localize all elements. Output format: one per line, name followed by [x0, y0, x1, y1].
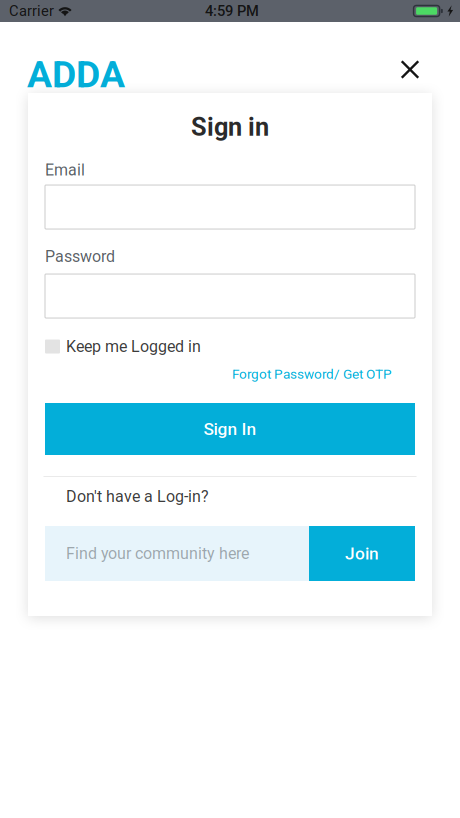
button[interactable]: Close	[388, 47, 432, 91]
button[interactable]: Join	[309, 526, 415, 581]
button[interactable]: Sign In	[45, 403, 415, 455]
staticText: ADDA	[27, 53, 125, 96]
staticText: Sign in	[191, 112, 269, 142]
staticText: Carrier	[9, 2, 54, 20]
staticText: Find your community here	[66, 544, 249, 563]
staticText: Keep me Logged in	[66, 337, 201, 356]
button[interactable]: Find your community here	[45, 526, 309, 581]
staticText: Sign In	[203, 419, 256, 439]
staticText: 4:59 PM	[205, 2, 259, 20]
staticText: Forgot Password/ Get OTP	[232, 366, 392, 382]
button[interactable]: Forgot Password/ Get OTP	[45, 367, 415, 381]
staticText: Password	[45, 247, 115, 266]
staticText: Don't have a Log-in?	[66, 487, 209, 506]
button[interactable]: Keep me Logged in	[45, 339, 415, 354]
staticText: Email	[45, 161, 85, 179]
staticText: Join	[345, 543, 379, 564]
